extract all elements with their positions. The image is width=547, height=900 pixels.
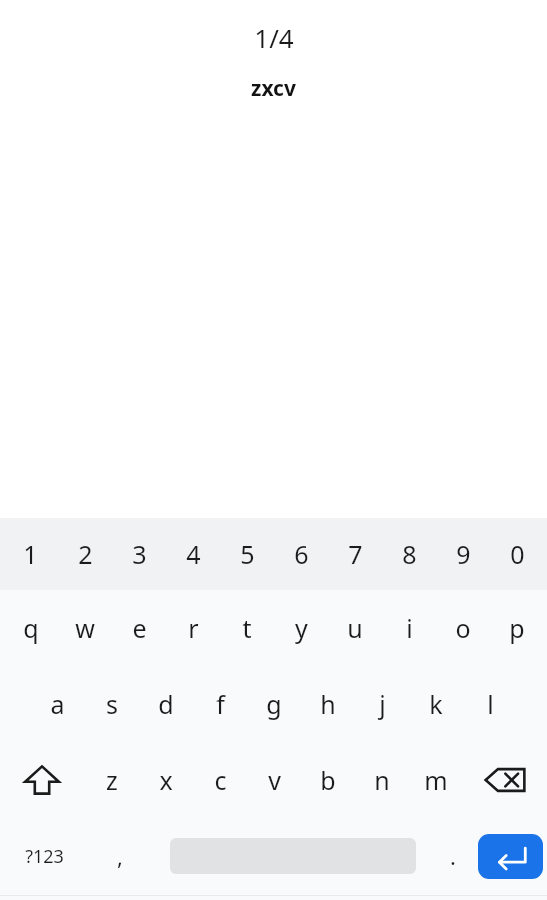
button[interactable]: 6	[274, 518, 328, 590]
button[interactable]: 0	[490, 518, 544, 590]
staticText: 8	[402, 537, 417, 571]
button[interactable]: 1	[3, 518, 58, 590]
button[interactable]: r	[166, 590, 220, 666]
staticText: i	[406, 611, 413, 645]
button[interactable]: i	[382, 590, 436, 666]
button[interactable]: 5	[220, 518, 274, 590]
staticText: 1	[23, 537, 38, 571]
button[interactable]: n	[355, 742, 409, 818]
button[interactable]: a	[30, 666, 85, 742]
button[interactable]: z	[84, 742, 139, 818]
button[interactable]: .	[433, 818, 473, 894]
button[interactable]: 3	[112, 518, 166, 590]
staticText: h	[320, 687, 336, 721]
button[interactable]: 9	[436, 518, 490, 590]
staticText: b	[320, 763, 336, 797]
button[interactable]: ?123	[0, 818, 88, 894]
staticText: 3	[132, 537, 147, 571]
button[interactable]: v	[247, 742, 301, 818]
staticText: u	[347, 611, 363, 645]
staticText: 2	[78, 537, 93, 571]
button[interactable]: Enter	[478, 834, 543, 879]
staticText: 5	[240, 537, 255, 571]
button[interactable]: o	[436, 590, 490, 666]
staticText: 9	[456, 537, 471, 571]
button[interactable]: Backspace	[463, 742, 547, 818]
button[interactable]: 7	[328, 518, 382, 590]
staticText: m	[424, 763, 448, 797]
staticText: s	[106, 687, 118, 721]
button[interactable]: w	[58, 590, 112, 666]
staticText: ,	[117, 841, 123, 871]
staticText: d	[158, 687, 174, 721]
staticText: j	[379, 687, 386, 721]
button[interactable]: b	[301, 742, 355, 818]
staticText: e	[132, 611, 147, 645]
button[interactable]: c	[193, 742, 247, 818]
button[interactable]: Shift	[0, 742, 84, 818]
button[interactable]: u	[328, 590, 382, 666]
staticText: 1/4	[254, 20, 294, 55]
button[interactable]: f	[193, 666, 247, 742]
button[interactable]: l	[463, 666, 517, 742]
staticText: t	[242, 611, 252, 645]
button[interactable]: ,	[88, 818, 152, 894]
staticText: w	[75, 611, 95, 645]
staticText: n	[374, 763, 390, 797]
staticText: zxcv	[251, 74, 296, 103]
staticText: 4	[186, 537, 201, 571]
staticText: p	[509, 611, 525, 645]
button[interactable]: y	[274, 590, 328, 666]
button[interactable]: q	[3, 590, 58, 666]
button[interactable]: j	[355, 666, 409, 742]
staticText: 7	[348, 537, 363, 571]
button[interactable]: k	[409, 666, 463, 742]
staticText: k	[429, 687, 443, 721]
button[interactable]: m	[409, 742, 463, 818]
button[interactable]: d	[139, 666, 193, 742]
staticText: q	[23, 611, 39, 645]
button[interactable]: t	[220, 590, 274, 666]
staticText: x	[159, 763, 173, 797]
staticText: v	[268, 763, 281, 797]
staticText: a	[50, 687, 65, 721]
button[interactable]: 8	[382, 518, 436, 590]
staticText: o	[455, 611, 471, 645]
staticText: c	[214, 763, 227, 797]
staticText: 6	[294, 537, 309, 571]
button[interactable]: h	[301, 666, 355, 742]
staticText: y	[295, 611, 308, 645]
staticText: g	[266, 687, 282, 721]
staticText: z	[106, 763, 118, 797]
staticText: l	[487, 687, 494, 721]
button[interactable]: p	[490, 590, 544, 666]
button[interactable]: e	[112, 590, 166, 666]
staticText: ?123	[25, 844, 64, 869]
button[interactable]: x	[139, 742, 193, 818]
button[interactable]: g	[247, 666, 301, 742]
button[interactable]: 2	[58, 518, 112, 590]
button[interactable]: 4	[166, 518, 220, 590]
staticText: r	[188, 611, 199, 645]
button[interactable]: s	[85, 666, 139, 742]
staticText: f	[216, 687, 225, 721]
staticText: 0	[510, 537, 525, 571]
staticText: .	[450, 841, 456, 871]
